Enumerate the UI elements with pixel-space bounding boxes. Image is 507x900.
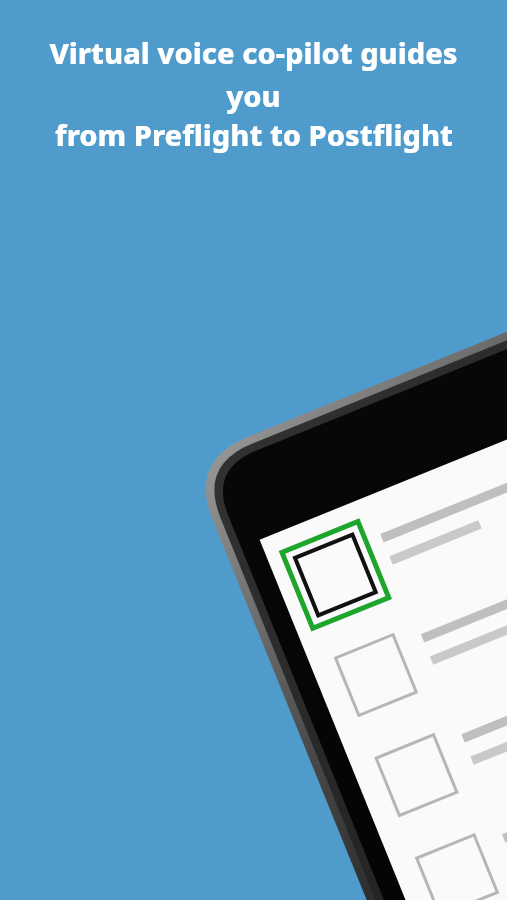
staticText: Virtual voice co-pilot guides you [20, 33, 487, 115]
button[interactable]: Preflight checklist app preview [0, 0, 507, 900]
staticText: from Preflight to Postflight [55, 115, 453, 154]
